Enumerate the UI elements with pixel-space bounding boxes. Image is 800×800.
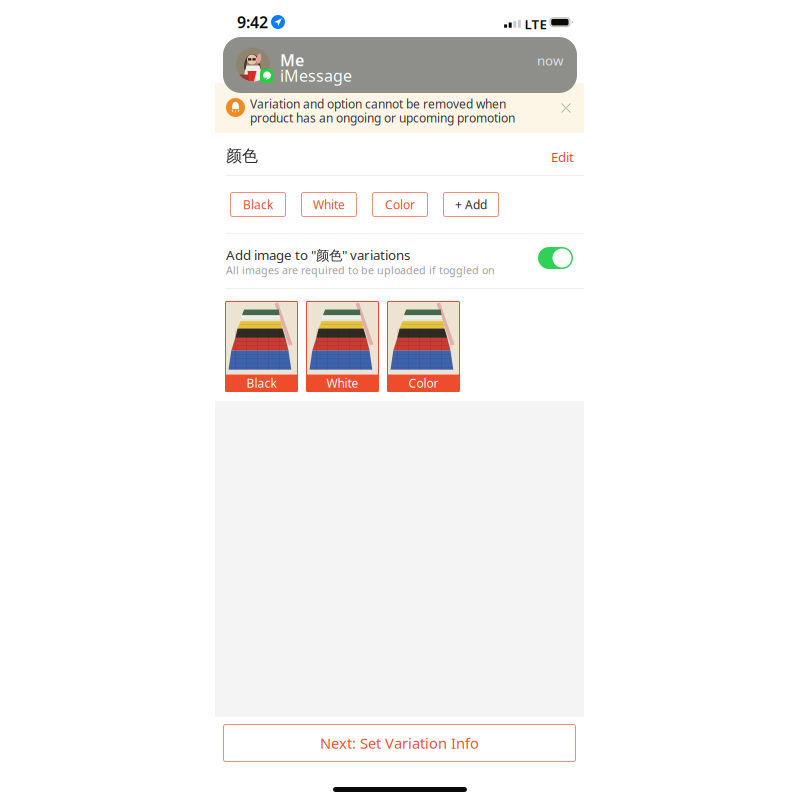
staticText: Edit [551, 148, 574, 166]
staticText: Black [246, 375, 276, 391]
button[interactable]: Color [387, 301, 459, 391]
staticText: product has an ongoing or upcoming promo… [250, 110, 515, 126]
button[interactable]: Dismiss [560, 102, 572, 114]
staticText: Color [385, 196, 415, 212]
button[interactable]: + Add [443, 192, 499, 217]
staticText: Black [243, 196, 273, 212]
staticText: White [313, 196, 345, 212]
staticText: LTE [524, 15, 546, 33]
button[interactable]: Color [372, 192, 428, 217]
button[interactable]: Black [230, 192, 286, 217]
button[interactable]: Add image to colour variations [538, 247, 573, 269]
staticText: Next: Set Variation Info [320, 733, 479, 753]
staticText: Me [280, 49, 304, 71]
button[interactable]: White [301, 192, 357, 217]
button[interactable]: White [306, 301, 378, 391]
staticText: Add image to "颜色" variations [226, 246, 410, 264]
staticText: 9:42 [237, 11, 268, 33]
button[interactable]: Next: Set Variation Info [223, 724, 576, 762]
staticText: iMessage [280, 65, 352, 86]
staticText: All images are required to be uploaded i… [226, 263, 495, 277]
button[interactable]: Black [225, 301, 297, 391]
button[interactable]: 颜色 [215, 133, 584, 175]
staticText: now [537, 51, 563, 69]
staticText: Color [408, 375, 438, 391]
staticText: + Add [455, 196, 487, 212]
staticText: 颜色 [226, 146, 258, 166]
staticText: Variation and option cannot be removed w… [250, 96, 506, 112]
staticText: White [326, 375, 358, 391]
button[interactable]: Me [223, 37, 577, 93]
